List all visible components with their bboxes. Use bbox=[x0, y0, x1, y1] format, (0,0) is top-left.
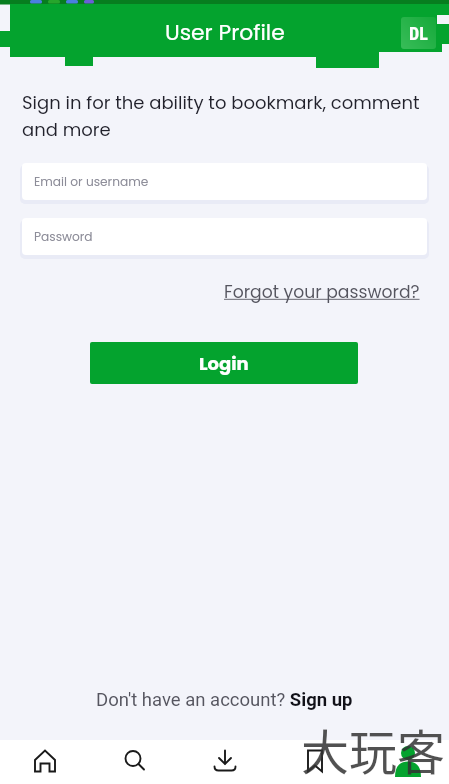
staticText: Don't have an account? Sign up bbox=[96, 689, 353, 711]
button[interactable] bbox=[179, 740, 269, 784]
staticText: Password bbox=[34, 228, 93, 245]
button[interactable]: Forgot your password? bbox=[224, 280, 420, 304]
staticText: Sign in for the ability to bookmark, com… bbox=[22, 90, 420, 142]
staticText: 大玩客 bbox=[301, 714, 446, 784]
button[interactable]: Email or username bbox=[22, 163, 427, 200]
staticText: User Profile bbox=[165, 17, 285, 48]
button[interactable] bbox=[0, 740, 89, 784]
staticText: DL bbox=[409, 23, 428, 44]
staticText: Email or username bbox=[34, 173, 149, 190]
button[interactable]: Don't have an account? Sign up bbox=[0, 689, 449, 711]
button[interactable]: DL bbox=[401, 17, 436, 49]
button[interactable]: Login bbox=[90, 342, 358, 384]
button[interactable]: Password bbox=[22, 218, 427, 255]
staticText: Login bbox=[199, 351, 249, 376]
button[interactable] bbox=[359, 740, 449, 784]
button[interactable] bbox=[89, 740, 179, 784]
button[interactable] bbox=[269, 740, 359, 784]
